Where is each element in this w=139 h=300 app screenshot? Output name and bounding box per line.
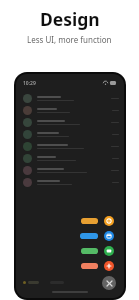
button[interactable] [81, 213, 114, 228]
button[interactable]: Close actions menu [102, 276, 116, 290]
button[interactable] [16, 164, 124, 176]
button[interactable] [80, 228, 114, 243]
button[interactable] [81, 243, 114, 258]
button[interactable] [16, 140, 124, 152]
staticText: 10:29 [23, 80, 36, 87]
button[interactable] [23, 277, 39, 288]
button[interactable] [16, 92, 124, 104]
button[interactable] [16, 176, 124, 188]
staticText: Less UI, more function [27, 34, 112, 45]
button[interactable] [50, 277, 64, 288]
button[interactable] [16, 152, 124, 164]
button[interactable] [16, 128, 124, 140]
button[interactable] [16, 116, 124, 128]
button[interactable] [81, 258, 114, 273]
staticText: Design [40, 7, 100, 31]
button[interactable] [16, 104, 124, 116]
